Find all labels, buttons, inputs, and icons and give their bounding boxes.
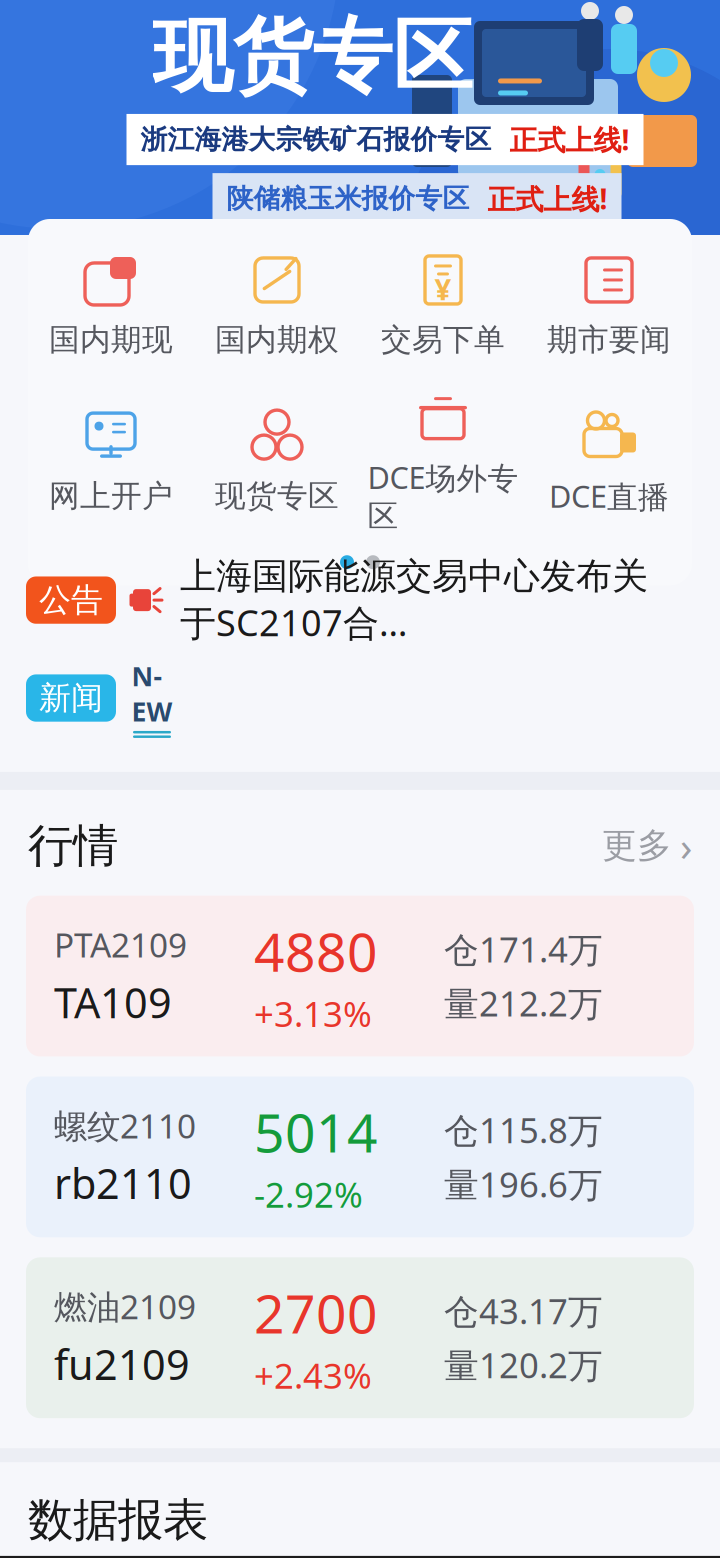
staticText: 量196.6万 <box>444 1161 603 1207</box>
staticText: 陕储粮玉米报价专区 <box>226 182 469 215</box>
staticText: rb2110 <box>54 1156 192 1210</box>
button[interactable]: DCE直播 <box>526 399 692 522</box>
staticText: 数据报表 <box>28 1492 208 1548</box>
staticText: +2.43% <box>254 1352 372 1398</box>
button[interactable]: PTA2109 <box>26 896 694 1056</box>
staticText: 现货专区 <box>215 477 339 515</box>
staticText: 交易下单 <box>381 321 505 359</box>
staticText: 螺纹2110 <box>54 1103 196 1148</box>
staticText: 国内期现 <box>49 321 173 359</box>
staticText: 4880 <box>254 916 378 986</box>
button[interactable]: 国内期权 <box>194 245 360 365</box>
staticText: 新闻 <box>39 678 103 718</box>
staticText: 燃油2109 <box>54 1284 196 1328</box>
staticText: DCE直播 <box>549 475 669 516</box>
staticText: TA109 <box>54 975 172 1030</box>
staticText: 仓115.8万 <box>444 1107 603 1153</box>
staticText: › <box>680 819 692 872</box>
staticText: DCE场外专区 <box>367 457 518 535</box>
staticText: ¥ <box>434 269 451 308</box>
staticText: 上海国际能源交易中心发布关于SC2107合… <box>180 554 648 646</box>
staticText: PTA2109 <box>54 922 187 967</box>
staticText: 仓43.17万 <box>444 1288 603 1334</box>
staticText: fu2109 <box>54 1336 190 1391</box>
staticText: -2.92% <box>254 1171 363 1217</box>
staticText: 5014 <box>254 1096 378 1167</box>
staticText: 更多 <box>602 824 672 867</box>
button[interactable]: ¥ <box>360 245 526 365</box>
staticText: +3.13% <box>254 990 372 1036</box>
staticText: 行情 <box>28 818 118 874</box>
staticText: 仓171.4万 <box>444 926 603 972</box>
button[interactable]: 公告 <box>26 554 694 646</box>
staticText: 浙江海港大宗铁矿石报价专区 <box>140 123 491 156</box>
staticText: 量120.2万 <box>444 1342 603 1388</box>
staticText: 国内期权 <box>215 321 339 359</box>
button[interactable]: 国内期现 <box>28 245 194 365</box>
staticText: 公告 <box>39 580 103 620</box>
staticText: 网上开户 <box>49 477 173 515</box>
button[interactable]: 行情 <box>0 790 720 896</box>
staticText: 2700 <box>254 1277 378 1348</box>
button[interactable]: 螺纹2110 <box>26 1076 694 1237</box>
button[interactable]: 期市要闻 <box>526 245 692 365</box>
staticText: 正式上线! <box>487 180 607 217</box>
button[interactable]: 新闻 <box>26 658 694 738</box>
staticText: 期市要闻 <box>547 321 671 359</box>
staticText: 正式上线! <box>509 121 629 158</box>
staticText: NEW <box>131 658 172 729</box>
button[interactable]: 燃油2109 <box>26 1257 694 1418</box>
staticText: 现货专区 <box>152 8 472 106</box>
button[interactable]: 现货专区 <box>194 401 360 521</box>
button[interactable]: DCE场外专区 <box>360 381 526 541</box>
staticText: 量212.2万 <box>444 980 603 1026</box>
button[interactable]: 网上开户 <box>28 401 194 521</box>
